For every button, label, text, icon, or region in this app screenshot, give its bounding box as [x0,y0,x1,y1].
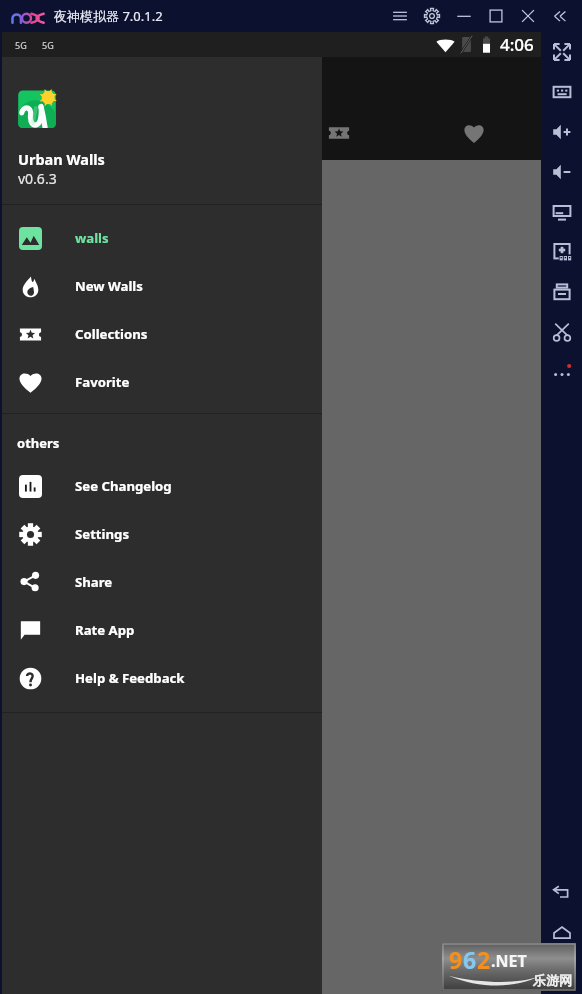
staticText: 乐游网 [533,972,572,988]
staticText: See Changelog [75,477,172,495]
button[interactable]: Close [512,0,544,32]
staticText: New Walls [75,277,143,295]
button[interactable]: Favorite [2,358,322,406]
staticText: 4:06 [500,33,534,56]
button[interactable]: Menu [384,0,416,32]
staticText: Help & Feedback [75,669,185,687]
button[interactable]: Install APK [541,232,582,272]
button[interactable]: Settings [416,0,448,32]
staticText: 夜神模拟器 7.0.1.2 [54,7,163,25]
button[interactable]: Volume up [541,112,582,152]
button[interactable]: Display [541,192,582,232]
button[interactable]: Collections [2,310,322,358]
button[interactable]: More [541,352,582,392]
button[interactable]: See Changelog [2,462,322,510]
button[interactable]: Maximize [480,0,512,32]
button[interactable]: Screenshot [541,312,582,352]
staticText: 5G [15,39,27,51]
button[interactable]: Share [2,558,322,606]
staticText: v0.6.3 [18,169,57,188]
staticText: 5G [42,39,54,51]
button[interactable]: Fullscreen [541,32,582,72]
staticText: others [17,434,60,452]
button[interactable]: Rate App [2,606,322,654]
button[interactable]: Collapse [544,0,576,32]
staticText: Rate App [75,621,135,639]
button[interactable]: Settings [2,510,322,558]
button[interactable]: Volume down [541,152,582,192]
button[interactable]: Keyboard [541,72,582,112]
button[interactable]: Minimize [448,0,480,32]
button[interactable]: Back [541,873,582,913]
staticText: Urban Walls [18,149,105,169]
button[interactable]: walls [2,214,322,262]
button[interactable]: Home [541,913,582,953]
staticText: 9 [449,944,463,975]
staticText: 6 [463,944,477,975]
staticText: Settings [75,525,130,543]
button[interactable]: File manager [541,272,582,312]
staticText: Favorite [75,373,130,391]
button[interactable]: Help & Feedback [2,654,322,702]
staticText: .NET [491,950,527,972]
button[interactable]: New Walls [2,262,322,310]
staticText: walls [75,229,109,247]
staticText: Share [75,573,113,591]
staticText: Collections [75,325,148,343]
staticText: 2 [477,944,491,975]
